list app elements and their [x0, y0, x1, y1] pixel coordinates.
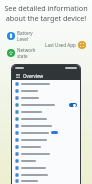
- button[interactable]: [12, 136, 80, 143]
- button[interactable]: [12, 94, 80, 101]
- button[interactable]: Toggle: [12, 101, 80, 108]
- staticText: Network state: [17, 47, 43, 59]
- button[interactable]: [12, 150, 80, 157]
- button[interactable]: Battery Level: [6, 29, 44, 43]
- button[interactable]: [12, 108, 80, 115]
- staticText: Battery Level: [17, 30, 43, 42]
- staticText: See detailed information: [3, 3, 89, 13]
- button[interactable]: [12, 129, 80, 136]
- button[interactable]: Network state: [6, 46, 44, 60]
- staticText: Overview: [23, 73, 44, 79]
- staticText: Last Used App: [45, 42, 76, 48]
- button[interactable]: Menu: [15, 73, 21, 79]
- button[interactable]: Toggle: [69, 103, 77, 107]
- button[interactable]: [12, 164, 80, 171]
- staticText: about the target device!: [3, 13, 89, 23]
- button[interactable]: [12, 122, 80, 129]
- button[interactable]: [12, 115, 80, 122]
- button[interactable]: [12, 80, 80, 87]
- button[interactable]: [12, 157, 80, 164]
- button[interactable]: [12, 87, 80, 94]
- button[interactable]: Last Used App: [44, 40, 87, 50]
- button[interactable]: [12, 143, 80, 150]
- button[interactable]: [12, 178, 80, 184]
- button[interactable]: [12, 171, 80, 178]
